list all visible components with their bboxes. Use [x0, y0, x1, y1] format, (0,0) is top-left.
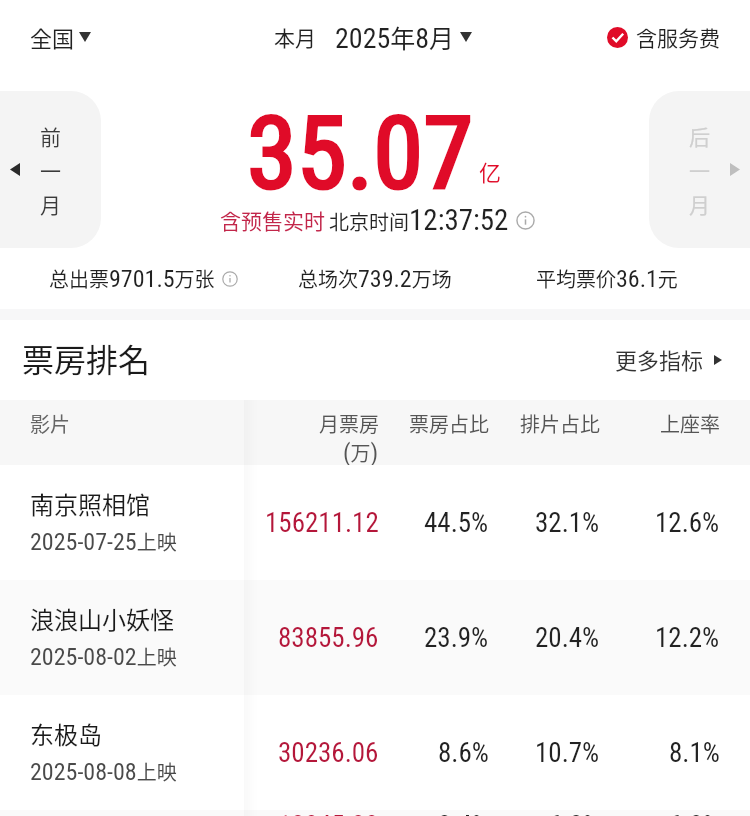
staticText: 156211.12	[265, 507, 379, 539]
staticText: 亿	[479, 155, 502, 187]
staticText: 全国	[30, 21, 75, 53]
staticText: 含服务费	[636, 22, 720, 52]
staticText: 6.2%	[549, 810, 600, 816]
button[interactable]: 含服务费	[607, 14, 720, 60]
staticText: 浪浪山小妖怪	[30, 601, 174, 636]
button[interactable]: 全国	[24, 13, 97, 61]
staticText: 2025-08-08上映	[30, 757, 177, 786]
button[interactable]: 长安的荔枝	[0, 810, 750, 816]
staticText: 平均票价36.1元	[536, 264, 678, 293]
staticText: 本月	[274, 22, 316, 52]
staticText: 83855.96	[278, 622, 379, 654]
staticText: 30236.06	[278, 737, 379, 769]
staticText: 前	[40, 121, 61, 151]
staticText: 35.07	[247, 94, 474, 212]
staticText: 南京照相馆	[30, 486, 150, 521]
button[interactable]: 浪浪山小妖怪	[0, 580, 750, 695]
staticText: 6.8%	[669, 810, 720, 816]
staticText: 12.6%	[655, 507, 720, 539]
staticText: 23.9%	[424, 622, 489, 654]
staticText: 更多指标	[615, 343, 704, 375]
staticText: 票房占比	[409, 409, 489, 438]
staticText: 影片	[30, 409, 70, 438]
staticText: 总场次739.2万场	[298, 264, 452, 293]
staticText: 12045.30	[278, 810, 379, 816]
button[interactable]: 本月	[268, 11, 478, 63]
staticText: 总出票9701.5万张	[49, 264, 215, 293]
staticText: 票房排名	[22, 335, 151, 381]
button[interactable]: 东极岛	[0, 695, 750, 810]
staticText: 8.1%	[669, 737, 720, 769]
staticText: 月票房	[319, 409, 379, 438]
button[interactable]: 南京照相馆	[0, 465, 750, 580]
staticText: 3.4%	[438, 810, 489, 816]
staticText: 32.1%	[535, 507, 600, 539]
staticText: 一	[40, 155, 61, 185]
staticText: 北京时间12:37:52	[329, 203, 509, 237]
staticText: 后	[689, 121, 710, 151]
staticText: 月	[40, 189, 61, 219]
staticText: 12.2%	[655, 622, 720, 654]
staticText: 含预售实时	[220, 205, 325, 235]
staticText: 月	[689, 189, 710, 219]
staticText: 2025年8月	[335, 19, 455, 55]
button[interactable]: 前一月	[0, 91, 101, 248]
staticText: 上座率	[660, 409, 720, 438]
button[interactable]: 更多指标	[615, 336, 722, 384]
staticText: 2025-08-02上映	[30, 642, 177, 671]
button[interactable]: 后一月	[649, 91, 750, 248]
staticText: 8.6%	[438, 737, 489, 769]
staticText: 排片占比	[520, 409, 600, 438]
staticText: 20.4%	[535, 622, 600, 654]
staticText: 一	[689, 155, 710, 185]
staticText: 44.5%	[424, 507, 489, 539]
staticText: 2025-07-25上映	[30, 527, 177, 556]
staticText: (万)	[343, 438, 379, 465]
staticText: 东极岛	[30, 716, 102, 751]
staticText: 10.7%	[535, 737, 600, 769]
